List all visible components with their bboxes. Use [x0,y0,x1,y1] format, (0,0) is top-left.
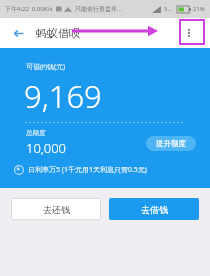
button[interactable]: 更多选项 [178,22,200,44]
staticText: 去借钱 [141,204,168,215]
staticText: 只能依行查盘寻… [75,5,122,13]
button[interactable]: 返回 [8,23,28,43]
staticText: 下午4:22 0.00K/s [5,5,53,13]
button[interactable]: 去借钱 [109,198,199,220]
staticText: 21% [193,5,205,13]
staticText: 去还钱 [43,204,70,215]
staticText: 可借的钱(元) [26,62,66,72]
button[interactable]: 去还钱 [11,198,101,220]
staticText: 5… [164,5,173,13]
staticText: 提升额度 [156,139,186,148]
staticText: 总额度 [26,129,46,137]
button[interactable]: 日利率万5 (1千元用1天利息只需0.5元) [0,165,210,188]
staticText: 10,000 [26,139,67,157]
staticText: 日利率万5 (1千元用1天利息只需0.5元) [28,165,147,175]
staticText: 蚂蚁借呗 [36,26,80,40]
button[interactable]: 提升额度 [146,136,196,151]
staticText: 9,169 [24,75,102,117]
